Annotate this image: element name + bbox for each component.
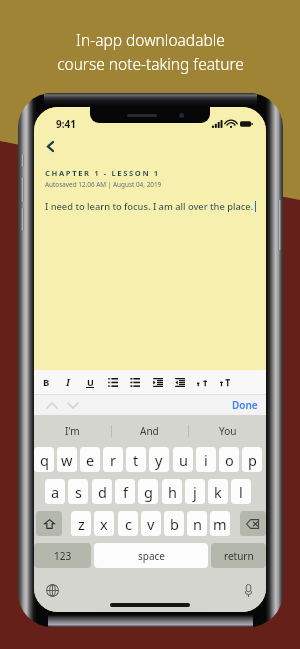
staticText: d bbox=[98, 482, 107, 502]
button[interactable]: i bbox=[196, 447, 216, 472]
staticText: return bbox=[224, 549, 254, 563]
staticText: You bbox=[219, 424, 237, 438]
button[interactable]: Next field bbox=[66, 395, 80, 415]
staticText: s bbox=[75, 482, 82, 502]
staticText: i bbox=[204, 450, 208, 470]
staticText: g bbox=[144, 482, 153, 502]
staticText: p bbox=[248, 450, 257, 470]
staticText: l bbox=[239, 482, 243, 502]
button[interactable]: c bbox=[118, 511, 138, 536]
staticText: In-app downloadable bbox=[76, 29, 225, 50]
staticText: y bbox=[155, 450, 163, 470]
button[interactable]: tlg bbox=[216, 370, 234, 394]
button[interactable]: w bbox=[57, 447, 77, 472]
button[interactable]: indl bbox=[171, 370, 189, 394]
button[interactable]: x bbox=[94, 511, 114, 536]
button[interactable]: Done bbox=[232, 398, 258, 412]
button[interactable]: u bbox=[173, 447, 193, 472]
staticText: I bbox=[66, 376, 70, 389]
button[interactable]: y bbox=[149, 447, 169, 472]
button[interactable]: o bbox=[219, 447, 239, 472]
staticText: And bbox=[140, 424, 159, 438]
button[interactable]: ul bbox=[126, 370, 144, 394]
staticText: f bbox=[123, 482, 128, 502]
staticText: x bbox=[100, 514, 108, 534]
button[interactable]: f bbox=[115, 479, 135, 504]
staticText: q bbox=[40, 450, 49, 470]
button[interactable]: Backspace bbox=[240, 511, 266, 536]
button[interactable]: g bbox=[138, 479, 158, 504]
staticText: B bbox=[43, 376, 50, 389]
button[interactable]: b bbox=[164, 511, 184, 536]
button[interactable]: Shift bbox=[36, 511, 62, 536]
button[interactable]: r bbox=[103, 447, 123, 472]
staticText: e bbox=[86, 450, 95, 470]
staticText: v bbox=[147, 514, 155, 534]
button[interactable]: indr bbox=[149, 370, 167, 394]
staticText: I need to learn to focus. I am all over … bbox=[45, 200, 254, 213]
button[interactable]: Previous field bbox=[45, 395, 59, 415]
staticText: 9:41 bbox=[56, 117, 76, 131]
staticText: w bbox=[61, 450, 73, 470]
button[interactable]: I'm bbox=[34, 415, 111, 447]
button[interactable]: tsm bbox=[193, 370, 211, 394]
staticText: h bbox=[168, 482, 177, 502]
button[interactable]: j bbox=[185, 479, 205, 504]
button[interactable]: space bbox=[94, 543, 208, 568]
staticText: U bbox=[87, 376, 94, 388]
button[interactable]: z bbox=[71, 511, 91, 536]
button[interactable]: d bbox=[92, 479, 112, 504]
staticText: Autosaved 12.06 AM | August 04, 2019 bbox=[45, 180, 162, 189]
button[interactable]: a bbox=[45, 479, 65, 504]
button[interactable]: q bbox=[34, 447, 54, 472]
button[interactable]: Dictate bbox=[236, 578, 260, 602]
button[interactable]: Back bbox=[40, 134, 61, 159]
button[interactable]: h bbox=[162, 479, 182, 504]
button[interactable]: ol bbox=[104, 370, 122, 394]
button[interactable]: Change keyboard bbox=[40, 578, 64, 602]
button[interactable]: B bbox=[37, 370, 55, 394]
staticText: I'm bbox=[65, 424, 80, 438]
button[interactable]: v bbox=[141, 511, 161, 536]
staticText: c bbox=[125, 514, 132, 534]
button[interactable]: I bbox=[59, 370, 77, 394]
staticText: a bbox=[51, 482, 60, 502]
button[interactable]: return bbox=[211, 543, 266, 568]
staticText: j bbox=[193, 482, 197, 502]
button[interactable]: n bbox=[187, 511, 207, 536]
staticText: n bbox=[193, 514, 202, 534]
button[interactable]: e bbox=[80, 447, 100, 472]
button[interactable]: t bbox=[126, 447, 146, 472]
button[interactable]: U bbox=[81, 370, 99, 394]
staticText: m bbox=[213, 514, 227, 534]
staticText: b bbox=[170, 514, 179, 534]
staticText: k bbox=[214, 482, 222, 502]
button[interactable]: s bbox=[68, 479, 88, 504]
button[interactable]: m bbox=[210, 511, 230, 536]
button[interactable]: l bbox=[231, 479, 251, 504]
button[interactable]: k bbox=[208, 479, 228, 504]
button[interactable]: And bbox=[111, 415, 188, 447]
staticText: Done bbox=[232, 398, 258, 412]
staticText: z bbox=[78, 514, 85, 534]
staticText: r bbox=[110, 450, 116, 470]
staticText: CHAPTER 1 - LESSON 1 bbox=[45, 168, 160, 178]
button[interactable]: You bbox=[189, 415, 266, 447]
staticText: t bbox=[133, 450, 139, 470]
button[interactable]: 123 bbox=[34, 543, 91, 568]
button[interactable]: p bbox=[242, 447, 262, 472]
staticText: o bbox=[225, 450, 234, 470]
staticText: space bbox=[138, 549, 165, 563]
staticText: 123 bbox=[54, 549, 72, 563]
staticText: u bbox=[179, 450, 188, 470]
staticText: course note-taking feature bbox=[57, 53, 244, 74]
